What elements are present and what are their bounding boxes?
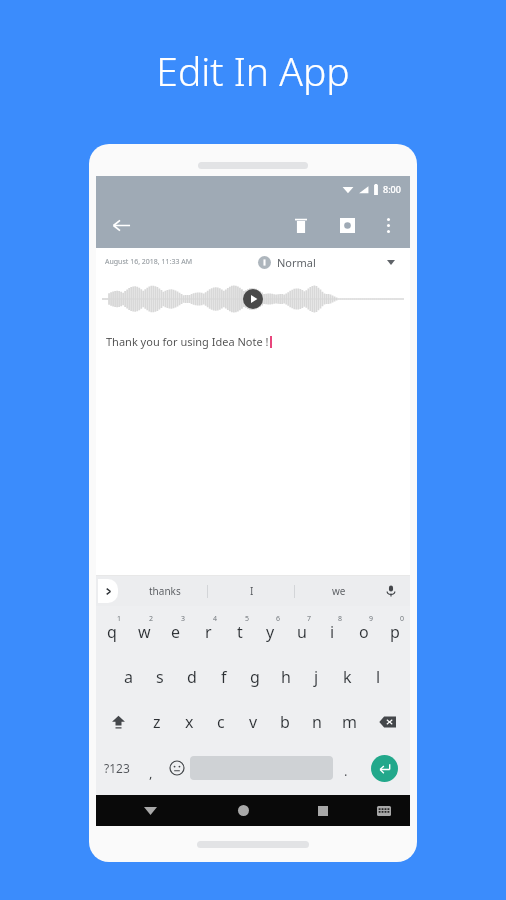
staticText: 7 xyxy=(307,614,312,624)
staticText: , xyxy=(149,764,153,782)
button[interactable]: Play xyxy=(243,289,263,309)
button[interactable]: Switch keyboard xyxy=(362,795,406,826)
button[interactable]: thanks xyxy=(122,576,208,606)
button[interactable]: Backspace xyxy=(365,699,410,744)
staticText: l xyxy=(376,666,381,688)
button[interactable]: ?123 xyxy=(96,744,138,792)
button[interactable]: x xyxy=(173,699,205,744)
button[interactable]: Shift xyxy=(96,699,141,744)
button[interactable]: . xyxy=(333,744,359,792)
button[interactable]: Back xyxy=(96,795,204,826)
staticText: 6 xyxy=(276,614,281,624)
staticText: v xyxy=(249,711,258,733)
button[interactable]: b xyxy=(269,699,301,744)
button[interactable]: e xyxy=(160,609,192,654)
staticText: k xyxy=(343,666,352,688)
button[interactable]: More options xyxy=(372,209,404,241)
button[interactable]: Home xyxy=(204,795,283,826)
button[interactable]: k xyxy=(332,654,363,699)
button[interactable]: Normal xyxy=(258,255,316,270)
staticText: r xyxy=(205,621,212,643)
staticText: f xyxy=(221,666,227,688)
button[interactable]: j xyxy=(301,654,332,699)
button[interactable]: a xyxy=(112,654,144,699)
button[interactable]: Voice input xyxy=(380,580,402,602)
button[interactable]: Save xyxy=(330,208,364,242)
button[interactable]: n xyxy=(301,699,333,744)
staticText: Edit In App xyxy=(156,44,350,97)
button[interactable]: z xyxy=(141,699,173,744)
button[interactable]: d xyxy=(176,654,208,699)
staticText: 2 xyxy=(149,614,154,624)
button[interactable]: t xyxy=(224,609,255,654)
staticText: h xyxy=(281,666,291,688)
staticText: I xyxy=(250,584,254,598)
button[interactable]: , xyxy=(138,744,164,792)
button[interactable]: v xyxy=(237,699,269,744)
button[interactable]: Enter xyxy=(371,755,398,782)
staticText: ?123 xyxy=(104,760,130,776)
staticText: i xyxy=(330,621,335,643)
button[interactable]: Delete xyxy=(284,208,318,242)
staticText: August 16, 2018, 11:33 AM xyxy=(105,257,193,267)
button[interactable]: r xyxy=(192,609,224,654)
staticText: . xyxy=(344,762,348,780)
button[interactable]: s xyxy=(144,654,176,699)
staticText: z xyxy=(153,711,161,733)
button[interactable]: g xyxy=(239,654,270,699)
staticText: q xyxy=(107,621,117,643)
staticText: e xyxy=(171,621,181,643)
staticText: n xyxy=(312,711,322,733)
staticText: s xyxy=(156,666,164,688)
button[interactable]: c xyxy=(205,699,237,744)
staticText: t xyxy=(237,621,243,643)
button[interactable]: p xyxy=(379,609,410,654)
staticText: 1 xyxy=(117,614,122,624)
staticText: c xyxy=(217,711,225,733)
button[interactable]: o xyxy=(348,609,379,654)
button[interactable]: Emoji xyxy=(164,744,190,792)
staticText: 9 xyxy=(369,614,374,624)
staticText: Thank you for using Idea Note ! xyxy=(106,334,269,349)
staticText: 8:00 xyxy=(383,183,401,195)
staticText: thanks xyxy=(149,584,181,598)
button[interactable]: h xyxy=(270,654,301,699)
button[interactable]: m xyxy=(333,699,365,744)
button[interactable]: we xyxy=(295,576,382,606)
button[interactable]: Back xyxy=(104,208,138,242)
staticText: w xyxy=(138,621,151,643)
staticText: u xyxy=(297,621,307,643)
button[interactable]: q xyxy=(96,609,128,654)
staticText: o xyxy=(359,621,369,643)
staticText: 5 xyxy=(245,614,250,624)
staticText: j xyxy=(314,666,319,688)
button[interactable]: Dropdown xyxy=(381,252,401,272)
staticText: 8 xyxy=(338,614,343,624)
button[interactable]: I xyxy=(208,576,295,606)
staticText: 4 xyxy=(213,614,218,624)
staticText: Normal xyxy=(277,255,316,270)
staticText: x xyxy=(185,711,194,733)
staticText: g xyxy=(250,666,260,688)
staticText: we xyxy=(332,584,346,598)
staticText: p xyxy=(390,621,400,643)
button[interactable]: Recents xyxy=(283,795,362,826)
button[interactable]: y xyxy=(255,609,286,654)
staticText: 3 xyxy=(181,614,186,624)
button[interactable]: f xyxy=(208,654,239,699)
staticText: d xyxy=(187,666,197,688)
staticText: 0 xyxy=(400,614,405,624)
button[interactable]: Thank you for using Idea Note ! xyxy=(96,322,410,576)
button[interactable]: w xyxy=(128,609,160,654)
button[interactable]: u xyxy=(286,609,317,654)
staticText: a xyxy=(124,666,133,688)
staticText: m xyxy=(342,711,357,733)
button[interactable]: i xyxy=(317,609,348,654)
button[interactable]: Expand suggestions xyxy=(98,579,118,603)
button[interactable]: l xyxy=(363,654,394,699)
staticText: y xyxy=(266,621,275,643)
staticText: b xyxy=(280,711,290,733)
